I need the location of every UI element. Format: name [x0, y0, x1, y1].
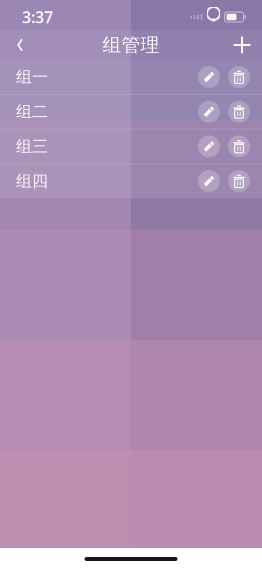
button[interactable]: 组一: [0, 60, 97, 94]
staticText: 组四: [16, 171, 48, 191]
staticText: 组管理: [102, 33, 159, 56]
button[interactable]: Edit 组四: [194, 164, 224, 198]
staticText: 组一: [16, 67, 48, 87]
button[interactable]: Back: [0, 30, 40, 60]
button[interactable]: Delete 组二: [224, 95, 254, 129]
button[interactable]: Delete 组一: [224, 60, 254, 94]
button[interactable]: Add group: [222, 30, 262, 60]
staticText: 3:37: [22, 6, 53, 28]
button[interactable]: Edit 组一: [194, 60, 224, 94]
button[interactable]: 组四: [0, 164, 97, 198]
button[interactable]: Delete 组四: [224, 164, 254, 198]
button[interactable]: Delete 组三: [224, 129, 254, 163]
button[interactable]: Edit 组三: [194, 129, 224, 163]
button[interactable]: 组二: [0, 95, 97, 129]
button[interactable]: 组三: [0, 129, 97, 163]
staticText: 组二: [16, 102, 48, 122]
button[interactable]: Edit 组二: [194, 95, 224, 129]
staticText: 组三: [16, 137, 48, 156]
